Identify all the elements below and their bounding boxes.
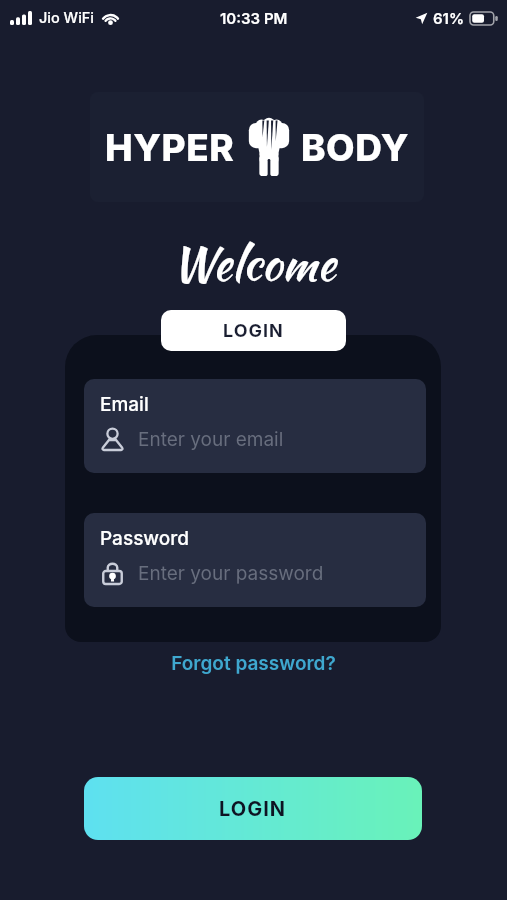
staticText: Enter your password <box>138 562 324 585</box>
button[interactable]: Password <box>84 513 426 607</box>
staticText: BODY <box>301 125 410 170</box>
staticText: Email <box>100 393 149 416</box>
staticText: 61% <box>433 9 465 27</box>
staticText: LOGIN <box>223 320 284 342</box>
staticText: 10:33 PM <box>220 9 288 27</box>
staticText: Password <box>100 527 190 550</box>
staticText: Enter your email <box>138 428 284 451</box>
staticText: HYPER <box>105 125 235 170</box>
staticText: Welcome <box>0 230 507 297</box>
button[interactable]: LOGIN <box>84 777 422 840</box>
button[interactable]: Forgot password? <box>0 652 507 675</box>
button[interactable]: Email <box>84 379 426 473</box>
button[interactable]: LOGIN <box>161 310 346 351</box>
staticText: LOGIN <box>219 797 287 821</box>
staticText: Jio WiFi <box>39 9 95 27</box>
